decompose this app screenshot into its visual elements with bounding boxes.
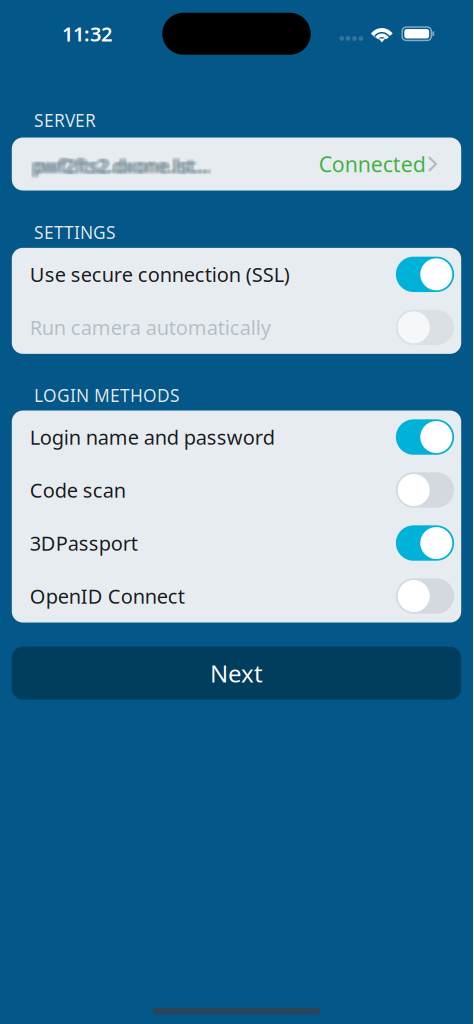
staticText: pwf2fts2.dxone.lst... (31, 152, 208, 177)
staticText: Next (210, 657, 263, 689)
button[interactable]: OpenID Connect (12, 570, 461, 623)
button[interactable]: pwf2fts2.dxone.lst... (0, 137, 473, 190)
staticText: Use secure connection (SSL) (30, 261, 290, 288)
staticText: Code scan (30, 477, 126, 503)
staticText: pwf2fts2.dxone.lst... (35, 152, 212, 176)
staticText: pwf2fts2.dxone.lst... (31, 155, 208, 179)
staticText: pwf2fts2.dxone.lst... (33, 152, 210, 176)
staticText: pwf2fts2.dxone.lst... (30, 154, 207, 179)
staticText: pwf2fts2.dxone.lst... (31, 153, 208, 178)
staticText: SERVER (34, 109, 96, 132)
staticText: pwf2fts2.dxone.lst... (33, 155, 210, 179)
button[interactable]: 3DPassport (12, 517, 461, 570)
staticText: SETTINGS (34, 221, 116, 244)
staticText: LOGIN METHODS (34, 384, 180, 407)
staticText: pwf2fts2.dxone.lst... (30, 153, 207, 178)
staticText: pwf2fts2.dxone.lst... (35, 153, 212, 178)
staticText: pwf2fts2.dxone.lst... (33, 152, 210, 177)
staticText: pwf2fts2.dxone.lst... (36, 155, 213, 179)
staticText: pwf2fts2.dxone.lst... (36, 152, 213, 177)
staticText: pwf2fts2.dxone.lst... (35, 154, 212, 179)
button[interactable]: Use secure connection (SSL) (12, 248, 461, 301)
staticText: pwf2fts2.dxone.lst... (30, 152, 207, 176)
staticText: Connected (319, 150, 426, 178)
staticText: 11:32 (62, 20, 112, 47)
staticText: pwf2fts2.dxone.lst... (34, 153, 211, 178)
staticText: pwf2fts2.dxone.lst... (34, 155, 211, 179)
staticText: pwf2fts2.dxone.lst... (36, 154, 213, 179)
staticText: 3DPassport (30, 530, 138, 556)
staticText: pwf2fts2.dxone.lst... (32, 155, 209, 179)
staticText: pwf2fts2.dxone.lst... (32, 154, 209, 179)
staticText: pwf2fts2.dxone.lst... (34, 152, 211, 177)
staticText: pwf2fts2.dxone.lst... (31, 152, 208, 176)
staticText: pwf2fts2.dxone.lst... (34, 152, 211, 176)
staticText: pwf2fts2.dxone.lst... (34, 154, 211, 179)
button[interactable]: Login name and password (12, 411, 461, 464)
staticText: pwf2fts2.dxone.lst... (31, 154, 208, 179)
staticText: pwf2fts2.dxone.lst... (32, 152, 209, 176)
staticText: Login name and password (30, 424, 275, 450)
button[interactable]: Code scan (12, 464, 461, 517)
staticText: Run camera automatically (30, 314, 271, 341)
staticText: pwf2fts2.dxone.lst... (33, 153, 210, 178)
button[interactable]: Run camera automatically (12, 301, 461, 354)
staticText: pwf2fts2.dxone.lst... (35, 155, 212, 179)
staticText: pwf2fts2.dxone.lst... (36, 153, 213, 178)
staticText: OpenID Connect (30, 583, 185, 609)
staticText: pwf2fts2.dxone.lst... (33, 154, 210, 179)
staticText: pwf2fts2.dxone.lst... (30, 152, 207, 177)
staticText: pwf2fts2.dxone.lst... (35, 152, 212, 177)
staticText: pwf2fts2.dxone.lst... (32, 153, 209, 178)
staticText: pwf2fts2.dxone.lst... (36, 152, 213, 176)
button[interactable]: Next (0, 647, 473, 700)
staticText: pwf2fts2.dxone.lst... (32, 152, 209, 177)
staticText: pwf2fts2.dxone.lst... (30, 155, 207, 179)
